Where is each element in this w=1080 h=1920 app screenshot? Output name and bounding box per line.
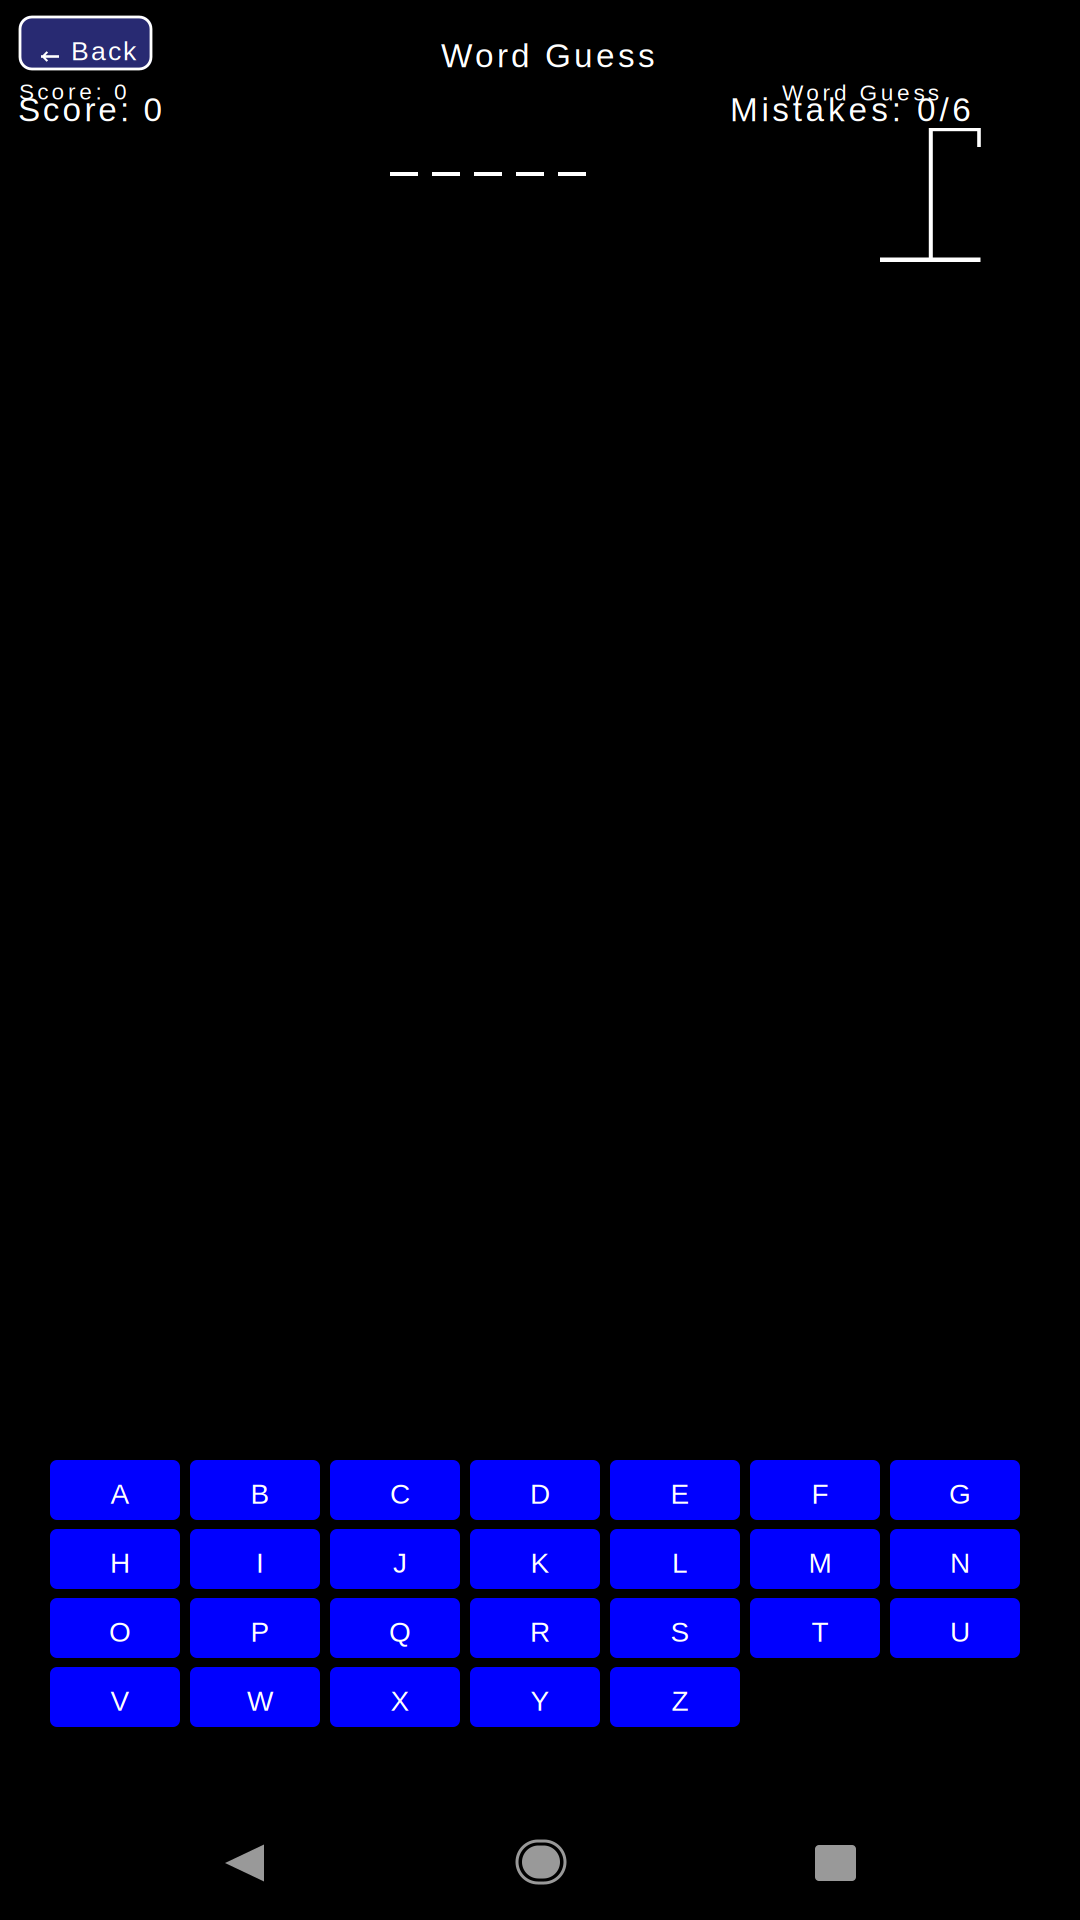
staticText: D [530, 1478, 550, 1510]
button[interactable]: D [470, 1460, 600, 1520]
button[interactable]: A [50, 1460, 180, 1520]
staticText: H [110, 1547, 130, 1579]
staticText: S [670, 1616, 689, 1648]
button[interactable]: P [190, 1598, 320, 1658]
staticText: Back [71, 36, 136, 66]
button[interactable]: F [750, 1460, 880, 1520]
button[interactable]: H [50, 1529, 180, 1589]
staticText: I [256, 1547, 264, 1579]
staticText: B [250, 1478, 269, 1510]
staticText: M [808, 1547, 831, 1579]
staticText: P [250, 1616, 269, 1648]
button[interactable]: Y [470, 1667, 600, 1727]
button[interactable]: U [890, 1598, 1020, 1658]
staticText: Y [530, 1685, 549, 1717]
staticText: U [950, 1616, 970, 1648]
button[interactable]: C [330, 1460, 460, 1520]
button[interactable]: G [890, 1460, 1020, 1520]
button[interactable]: L [610, 1529, 740, 1589]
staticText: Q [389, 1616, 411, 1648]
button[interactable]: Home [516, 1840, 566, 1884]
button[interactable]: X [330, 1667, 460, 1727]
staticText: Word Guess [782, 80, 939, 105]
staticText: V [110, 1685, 129, 1717]
button[interactable]: Z [610, 1667, 740, 1727]
staticText: G [949, 1478, 971, 1510]
button[interactable]: Back [225, 1844, 264, 1882]
button[interactable]: B [190, 1460, 320, 1520]
staticText: C [390, 1478, 410, 1510]
staticText: F [811, 1478, 828, 1510]
staticText: Z [671, 1685, 688, 1717]
staticText: X [390, 1685, 409, 1717]
button[interactable]: N [890, 1529, 1020, 1589]
button[interactable]: J [330, 1529, 460, 1589]
staticText: K [530, 1547, 549, 1579]
button[interactable]: E [610, 1460, 740, 1520]
button[interactable]: T [750, 1598, 880, 1658]
staticText: N [950, 1547, 970, 1579]
button[interactable]: O [50, 1598, 180, 1658]
button[interactable]: Q [330, 1598, 460, 1658]
button[interactable]: Back [19, 16, 152, 70]
staticText: Score: 0 [18, 91, 163, 128]
staticText: R [530, 1616, 550, 1648]
staticText: Word Guess [441, 37, 655, 74]
staticText: T [811, 1616, 828, 1648]
staticText: Score: 0 [19, 79, 127, 104]
button[interactable]: R [470, 1598, 600, 1658]
staticText: E [670, 1478, 689, 1510]
button[interactable]: K [470, 1529, 600, 1589]
staticText: Mistakes: 0/6 [730, 91, 971, 128]
button[interactable]: M [750, 1529, 880, 1589]
button[interactable]: I [190, 1529, 320, 1589]
button[interactable]: W [190, 1667, 320, 1727]
staticText: J [393, 1547, 407, 1579]
staticText: O [109, 1616, 131, 1648]
button[interactable]: S [610, 1598, 740, 1658]
button[interactable]: Recent apps [815, 1845, 856, 1881]
staticText: L [672, 1547, 688, 1579]
staticText: W [247, 1685, 273, 1717]
button[interactable]: V [50, 1667, 180, 1727]
staticText: A [110, 1478, 129, 1510]
